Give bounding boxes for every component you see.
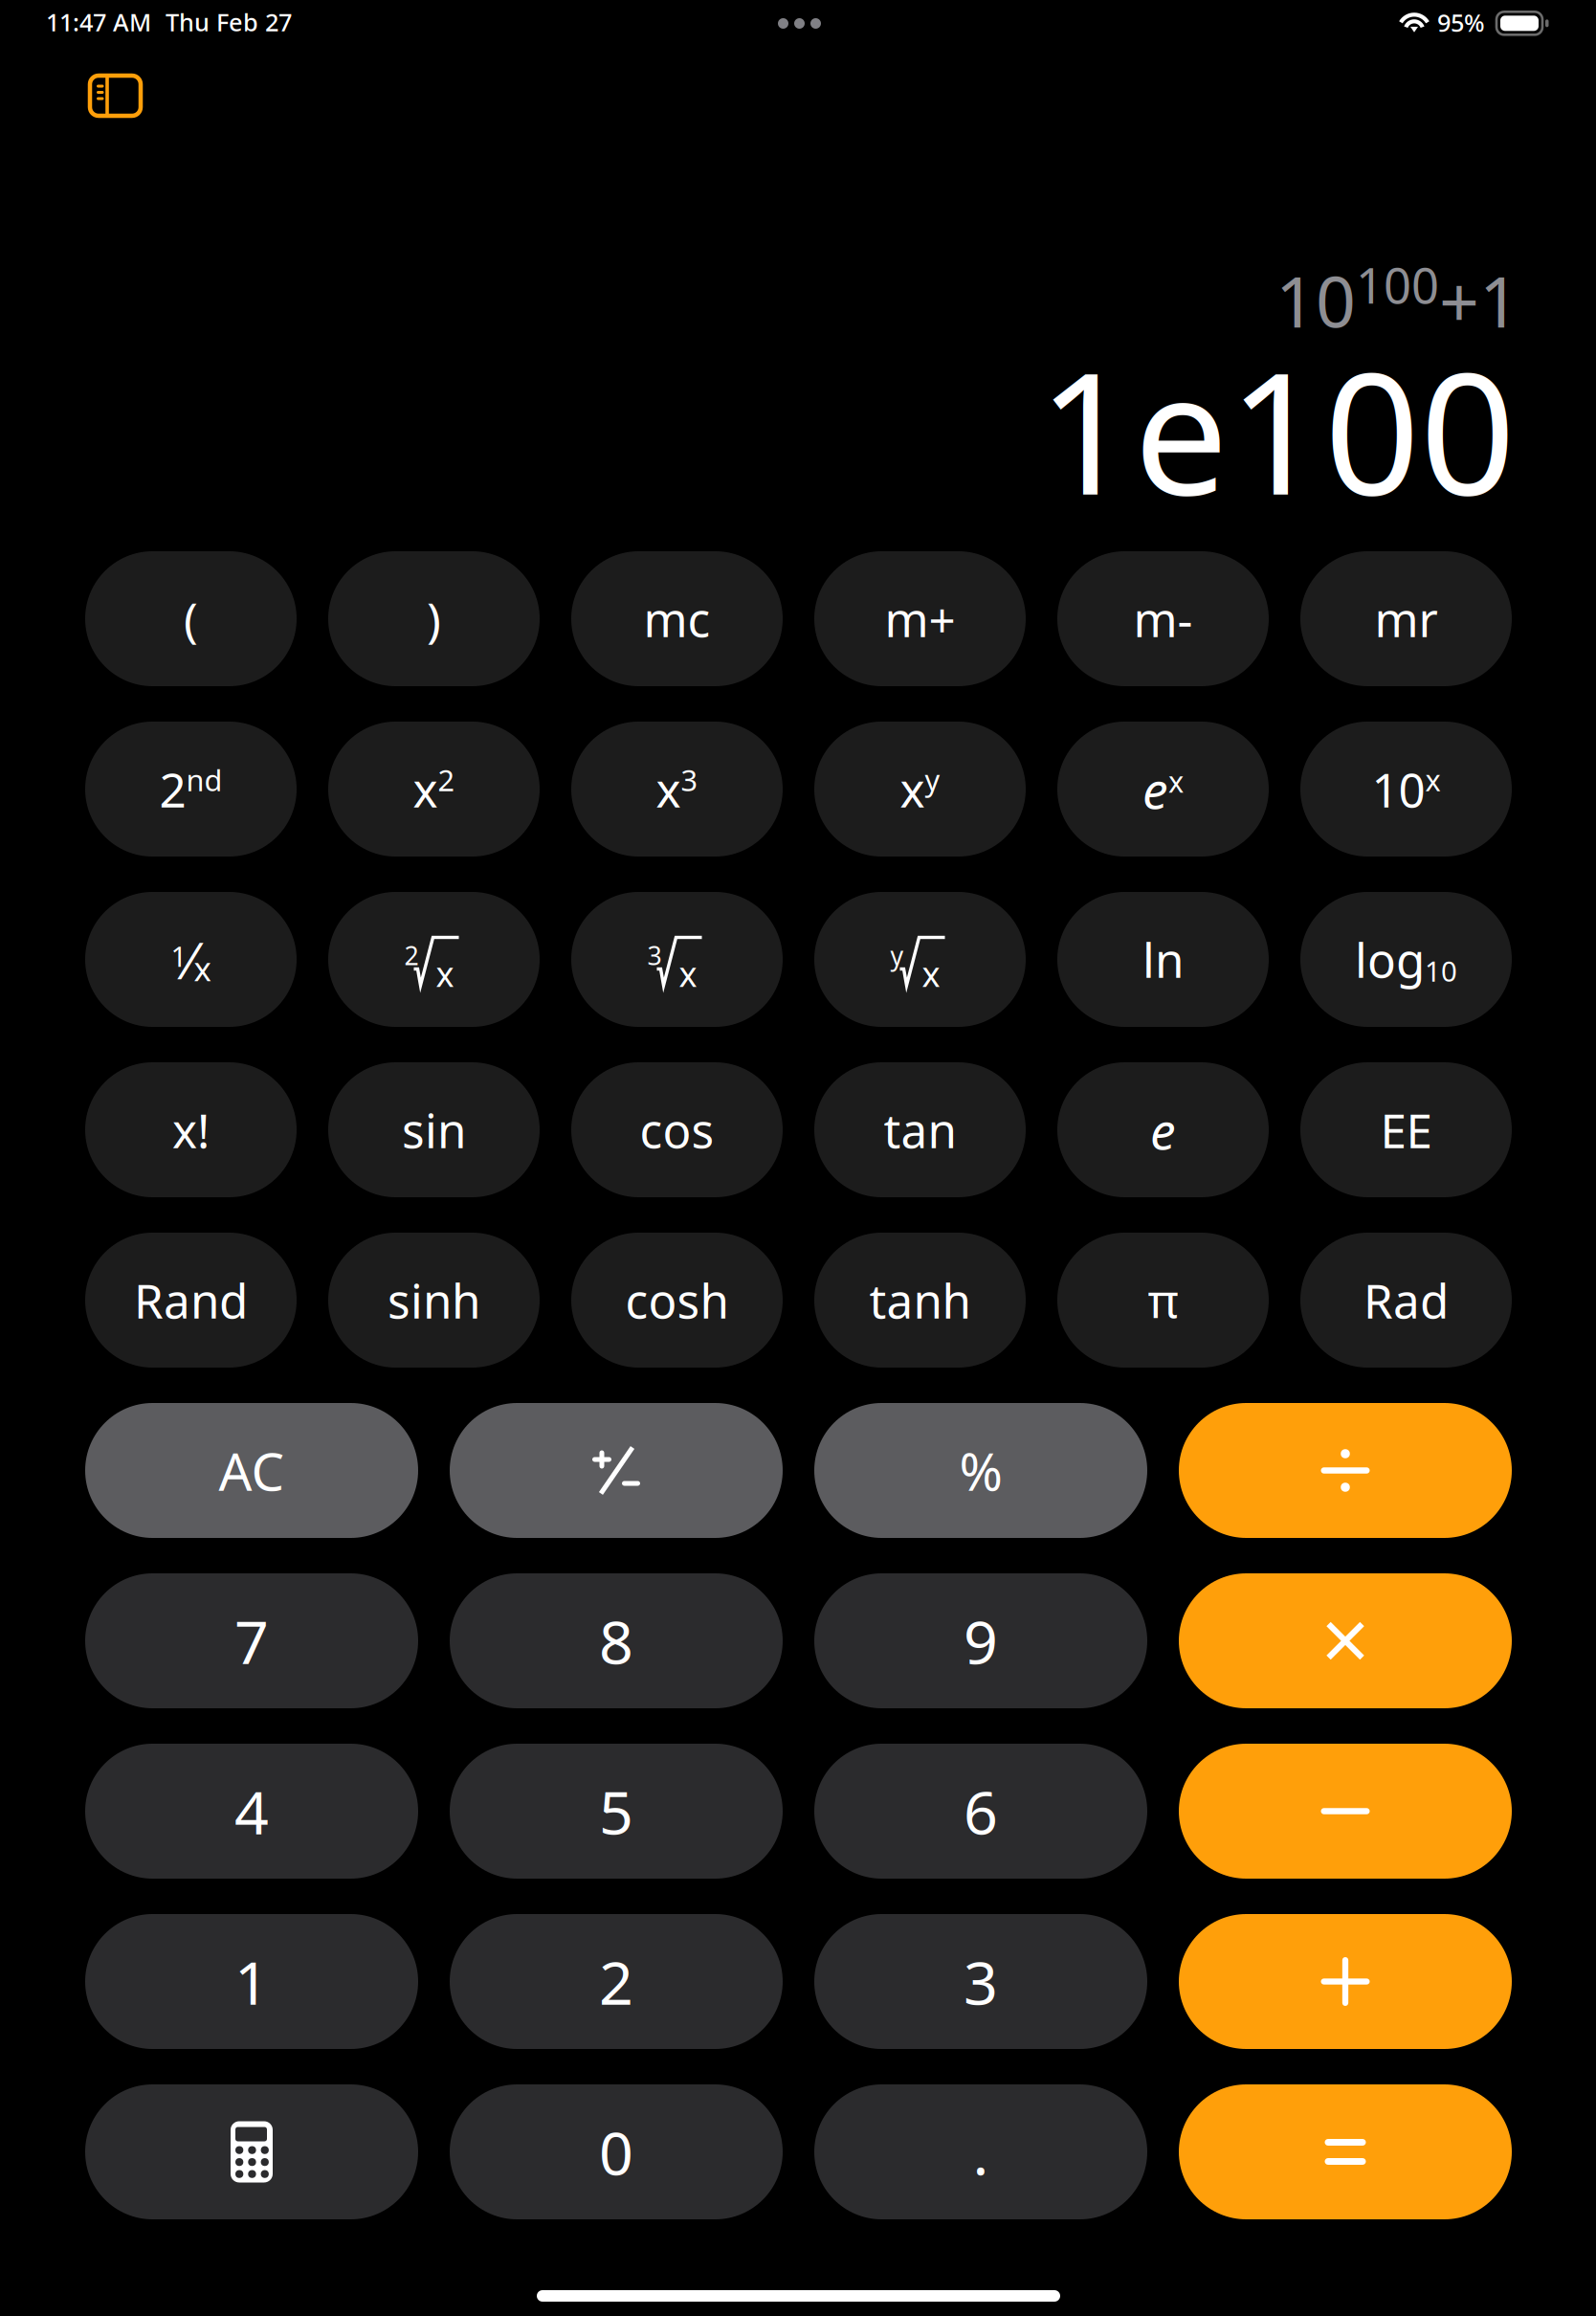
button[interactable]: 3 (814, 1914, 1147, 2049)
staticText: x2 (413, 758, 455, 820)
staticText: AC (219, 1436, 285, 1505)
button[interactable]: m+ (814, 551, 1026, 686)
staticText: 10x (1372, 758, 1441, 820)
staticText: cosh (625, 1269, 729, 1331)
button[interactable]: mr (1300, 551, 1512, 686)
staticText: 95% (1437, 6, 1485, 38)
button[interactable]: x3 (571, 722, 783, 857)
button[interactable]: 9 (814, 1573, 1147, 1708)
staticText: tanh (869, 1269, 971, 1331)
staticText: x (679, 951, 697, 997)
staticText: xy (900, 758, 940, 820)
staticText: x (436, 951, 454, 997)
staticText: 9 (964, 1601, 998, 1681)
staticText: EE (1380, 1098, 1432, 1161)
staticText: 1e100 (1038, 319, 1516, 541)
button[interactable]: % (814, 1403, 1147, 1538)
staticText: % (959, 1436, 1002, 1505)
button[interactable]: . (814, 2084, 1147, 2219)
button[interactable]: AC (85, 1403, 418, 1538)
button[interactable]: e (1057, 1062, 1269, 1197)
staticText: 11:47 AM (46, 6, 151, 38)
button[interactable]: ex (1057, 722, 1269, 857)
button[interactable]: Rad (1300, 1233, 1512, 1368)
staticText: mc (643, 587, 710, 650)
button[interactable]: 1 (85, 1914, 418, 2049)
button[interactable]: Square root of x (328, 892, 540, 1027)
button[interactable]: Show Sidebar (77, 62, 154, 129)
button[interactable]: π (1057, 1233, 1269, 1368)
button[interactable]: tanh (814, 1233, 1026, 1368)
staticText: Thu Feb 27 (166, 6, 292, 38)
button[interactable]: cosh (571, 1233, 783, 1368)
button[interactable]: Multiply (1179, 1573, 1512, 1708)
button[interactable]: ( (85, 551, 297, 686)
staticText: 4 (234, 1771, 269, 1851)
button[interactable]: 5 (450, 1744, 783, 1879)
button[interactable]: x2 (328, 722, 540, 857)
button[interactable]: ) (328, 551, 540, 686)
staticText: tan (884, 1098, 956, 1161)
staticText: 7 (234, 1601, 269, 1681)
button[interactable]: m- (1057, 551, 1269, 686)
staticText: ( (184, 587, 198, 650)
button[interactable]: ln (1057, 892, 1269, 1027)
button[interactable]: xy (814, 722, 1026, 857)
button[interactable]: 10x (1300, 722, 1512, 857)
button[interactable]: Divide (1179, 1403, 1512, 1538)
button[interactable]: 0 (450, 2084, 783, 2219)
staticText: y (890, 938, 904, 972)
staticText: 2 (404, 938, 419, 972)
button[interactable]: y-th root of x (814, 892, 1026, 1027)
button[interactable]: cos (571, 1062, 783, 1197)
staticText: x (922, 951, 940, 997)
button[interactable]: sin (328, 1062, 540, 1197)
staticText: 2 (599, 1942, 633, 2021)
staticText: π (1148, 1269, 1178, 1331)
button[interactable]: Plus Minus (450, 1403, 783, 1538)
staticText: e (1150, 1096, 1176, 1164)
staticText: 1 (234, 1942, 269, 2021)
button[interactable]: mc (571, 551, 783, 686)
staticText: ln (1142, 928, 1184, 991)
button[interactable]: Subtract (1179, 1744, 1512, 1879)
staticText: Rad (1363, 1269, 1449, 1331)
button[interactable]: One over x (85, 892, 297, 1027)
staticText: m+ (885, 587, 955, 650)
staticText: log10 (1355, 928, 1457, 991)
staticText: 3 (647, 938, 662, 972)
staticText: x3 (656, 758, 698, 820)
button[interactable]: 6 (814, 1744, 1147, 1879)
staticText: mr (1374, 587, 1438, 650)
button[interactable]: 2 (450, 1914, 783, 2049)
staticText: 6 (964, 1771, 998, 1851)
staticText: 1⁄x (171, 926, 211, 993)
button[interactable]: EE (1300, 1062, 1512, 1197)
staticText: x! (172, 1098, 210, 1161)
staticText: 5 (599, 1771, 633, 1851)
button[interactable]: 8 (450, 1573, 783, 1708)
staticText: 8 (599, 1601, 633, 1681)
staticText: Rand (134, 1269, 248, 1331)
button[interactable]: tan (814, 1062, 1026, 1197)
button[interactable]: log10 (1300, 892, 1512, 1027)
staticText: 2nd (159, 758, 222, 820)
staticText: 3 (964, 1942, 998, 2021)
button[interactable]: 2nd (85, 722, 297, 857)
button[interactable]: Basic Calculator (85, 2084, 418, 2219)
button[interactable]: 4 (85, 1744, 418, 1879)
staticText: 0 (599, 2112, 633, 2192)
staticText: ) (427, 587, 441, 650)
button[interactable]: sinh (328, 1233, 540, 1368)
button[interactable]: Add (1179, 1914, 1512, 2049)
button[interactable]: Equals (1179, 2084, 1512, 2219)
staticText: . (973, 2112, 989, 2192)
button[interactable]: Cube root of x (571, 892, 783, 1027)
staticText: cos (640, 1098, 714, 1161)
staticText: sinh (388, 1269, 480, 1331)
button[interactable]: 7 (85, 1573, 418, 1708)
staticText: sin (402, 1098, 466, 1161)
button[interactable]: x! (85, 1062, 297, 1197)
button[interactable]: Rand (85, 1233, 297, 1368)
staticText: ex (1142, 755, 1184, 823)
